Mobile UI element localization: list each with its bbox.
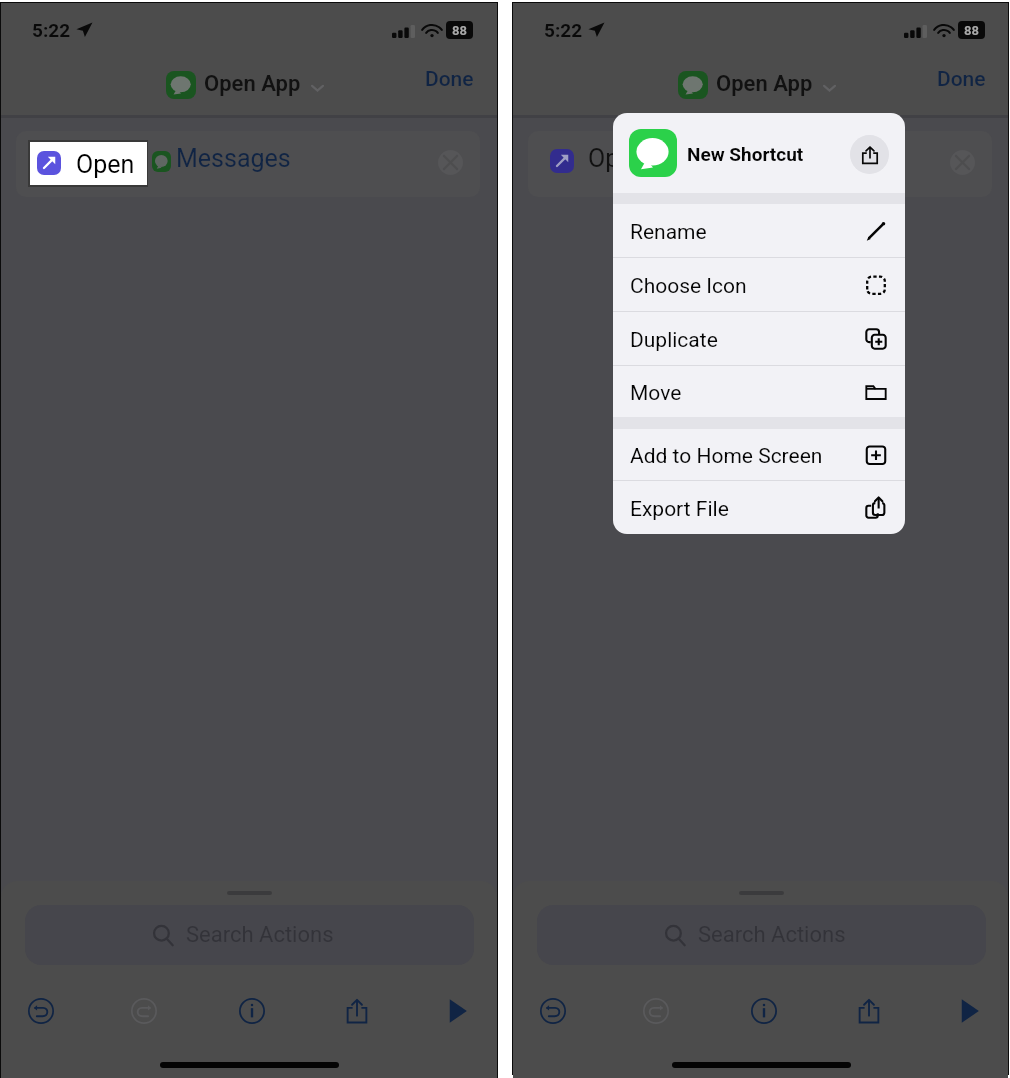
staticText: 5:22 [32, 19, 71, 41]
staticText: 5:22 [544, 19, 583, 41]
button[interactable]: Open [30, 142, 147, 185]
button[interactable]: Rename [613, 204, 905, 257]
button[interactable]: Share [336, 990, 378, 1032]
staticText: Messages [176, 144, 291, 173]
button[interactable]: Share [848, 990, 890, 1032]
staticText: Open App [204, 71, 301, 97]
staticText: Choose Icon [630, 274, 747, 299]
staticText: Open [76, 150, 135, 179]
button[interactable]: Run [436, 990, 478, 1032]
staticText: Search Actions [698, 922, 846, 948]
button[interactable]: Share [850, 135, 889, 174]
button[interactable]: Add to Home Screen [613, 429, 905, 480]
button[interactable]: Details [231, 990, 273, 1032]
button[interactable]: Choose Icon [613, 258, 905, 311]
staticText: Open [76, 144, 135, 173]
button[interactable]: Redo [123, 990, 165, 1032]
button[interactable] [528, 131, 992, 197]
button[interactable]: Export File [613, 481, 905, 534]
staticText: Open App [716, 71, 813, 97]
button[interactable] [16, 131, 480, 197]
button[interactable]: Details [743, 990, 785, 1032]
button[interactable]: Done [419, 61, 480, 98]
button[interactable]: Remove action [950, 150, 975, 175]
staticText: 88 [964, 23, 979, 38]
staticText: Search Actions [186, 922, 334, 948]
staticText: Done [425, 67, 474, 92]
staticText: Open [588, 144, 647, 173]
button[interactable]: Redo [635, 990, 677, 1032]
button[interactable]: Done [931, 61, 992, 98]
staticText: Rename [630, 220, 707, 245]
button[interactable]: Run [948, 990, 990, 1032]
staticText: Move [630, 381, 682, 406]
staticText: Messages [688, 144, 803, 173]
button[interactable]: Move [613, 366, 905, 417]
staticText: New Shortcut [687, 143, 804, 165]
button[interactable]: Undo [20, 990, 62, 1032]
staticText: 88 [452, 23, 467, 38]
staticText: Export File [630, 497, 729, 522]
staticText: Add to Home Screen [630, 444, 823, 469]
button[interactable]: Remove action [438, 150, 463, 175]
staticText: Done [937, 67, 986, 92]
staticText: Duplicate [630, 328, 718, 353]
button[interactable]: Duplicate [613, 312, 905, 365]
button[interactable]: Undo [532, 990, 574, 1032]
button[interactable]: New Shortcut [613, 113, 905, 193]
